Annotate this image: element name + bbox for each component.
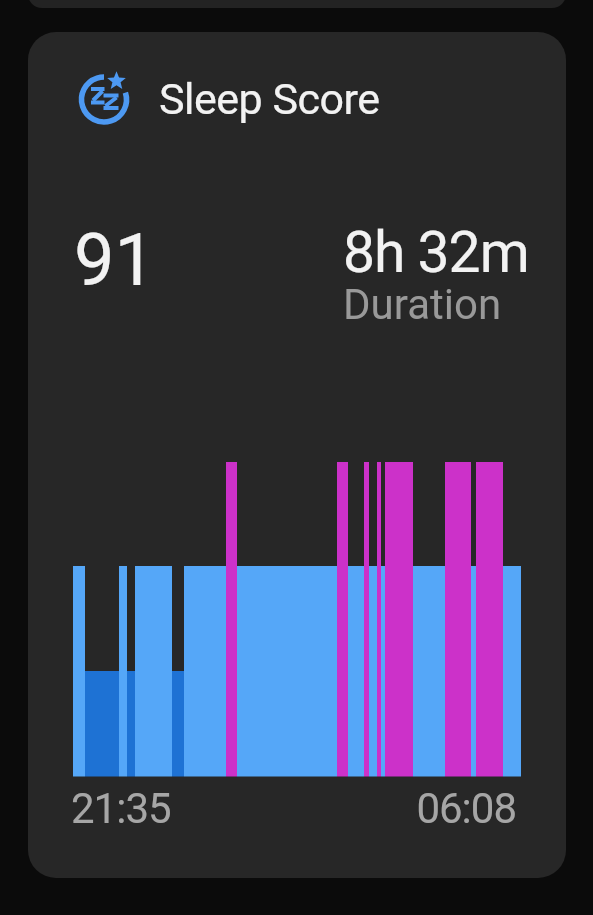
button[interactable]: Sleep Score: [28, 32, 566, 878]
staticText: 21:35: [71, 784, 171, 833]
staticText: Sleep Score: [159, 74, 380, 124]
staticText: 8h 32m: [343, 219, 529, 286]
staticText: Duration: [343, 280, 502, 329]
staticText: 06:08: [408, 784, 516, 833]
staticText: 91: [74, 218, 155, 302]
